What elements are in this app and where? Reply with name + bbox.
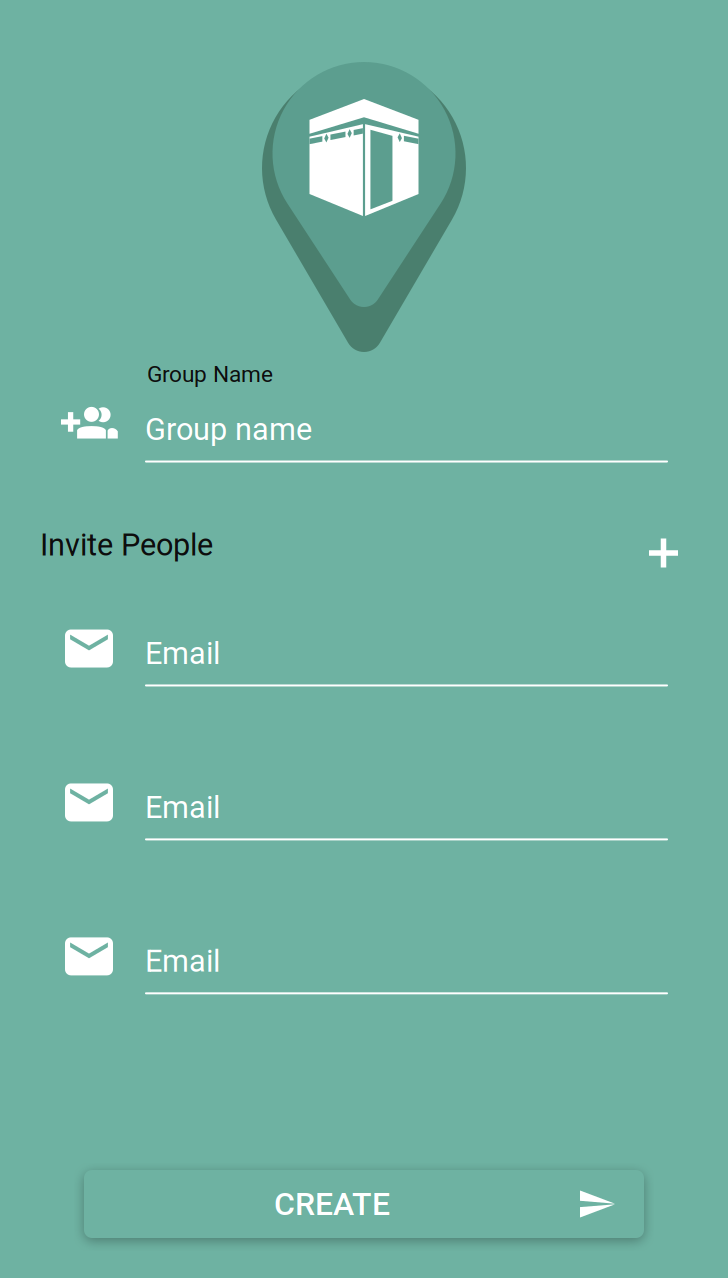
staticText: CREATE bbox=[274, 1185, 390, 1223]
staticText: Email bbox=[145, 789, 220, 825]
button[interactable]: Add person bbox=[639, 520, 688, 569]
staticText: Group Name bbox=[147, 361, 273, 388]
staticText: Email bbox=[145, 635, 220, 671]
staticText: Group name bbox=[145, 412, 312, 447]
staticText: Email bbox=[145, 943, 220, 979]
staticText: Invite People bbox=[40, 527, 213, 563]
button[interactable]: CREATE bbox=[84, 1170, 644, 1238]
